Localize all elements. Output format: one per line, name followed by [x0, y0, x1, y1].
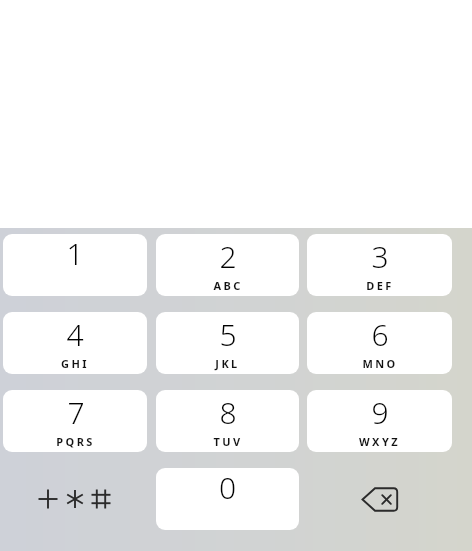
staticText: 8: [219, 392, 237, 433]
button[interactable]: 1: [3, 234, 147, 296]
button[interactable]: 0: [156, 468, 299, 530]
staticText: 5: [219, 314, 237, 355]
staticText: 9: [371, 392, 389, 433]
staticText: WXYZ: [359, 434, 400, 449]
staticText: TUV: [213, 434, 243, 449]
staticText: 4: [66, 314, 84, 355]
button[interactable]: 7: [3, 390, 147, 452]
staticText: JKL: [215, 356, 240, 371]
button[interactable]: 2: [156, 234, 299, 296]
staticText: ABC: [213, 278, 243, 293]
staticText: 1: [3, 234, 147, 295]
button[interactable]: 4: [3, 312, 147, 374]
staticText: GHI: [61, 356, 89, 371]
staticText: 6: [371, 314, 389, 355]
staticText: MNO: [362, 356, 398, 371]
staticText: 7: [67, 392, 85, 433]
staticText: DEF: [366, 278, 394, 293]
button[interactable]: 5: [156, 312, 299, 374]
button[interactable]: Plus, star, pound symbols: [3, 468, 147, 530]
staticText: PQRS: [56, 434, 95, 449]
button[interactable]: Delete: [307, 468, 452, 530]
staticText: 3: [371, 236, 389, 277]
button[interactable]: 9: [307, 390, 452, 452]
staticText: 0: [156, 468, 299, 529]
button[interactable]: 8: [156, 390, 299, 452]
button[interactable]: 3: [307, 234, 452, 296]
button[interactable]: 6: [307, 312, 452, 374]
staticText: 2: [219, 236, 237, 277]
